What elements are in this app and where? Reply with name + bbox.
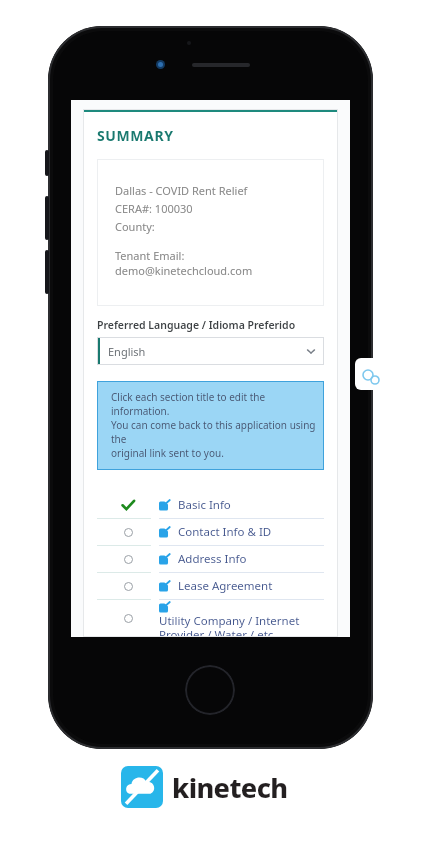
staticText: Address Info bbox=[178, 551, 247, 567]
staticText: kinetech bbox=[172, 769, 288, 806]
staticText: CERA#: 100030 bbox=[115, 201, 193, 216]
button[interactable]: Lease Agreement bbox=[97, 573, 324, 600]
staticText: County: bbox=[115, 219, 155, 234]
staticText: Dallas - COVID Rent Relief bbox=[115, 183, 248, 198]
button[interactable]: Basic Info bbox=[97, 492, 324, 519]
staticText: Basic Info bbox=[178, 497, 231, 513]
button[interactable]: Open support chat bbox=[355, 358, 383, 390]
staticText: Contact Info & ID bbox=[178, 524, 272, 540]
staticText: English bbox=[108, 344, 304, 359]
button[interactable]: Preferred language English bbox=[97, 337, 324, 365]
staticText: Lease Agreement bbox=[178, 578, 273, 594]
staticText: SUMMARY bbox=[97, 126, 174, 145]
button[interactable]: Address Info bbox=[97, 546, 324, 573]
staticText: Utility Company / Internet Provider / Wa… bbox=[159, 613, 300, 637]
staticText: Tenant Email: demo@kinetechcloud.com bbox=[115, 248, 314, 278]
button[interactable]: Utility Company / Internet Provider / Wa… bbox=[97, 600, 324, 637]
staticText: Preferred Language / Idioma Preferido bbox=[97, 318, 296, 332]
staticText: Click each section title to edit the inf… bbox=[111, 390, 316, 460]
button[interactable]: Contact Info & ID bbox=[97, 519, 324, 546]
